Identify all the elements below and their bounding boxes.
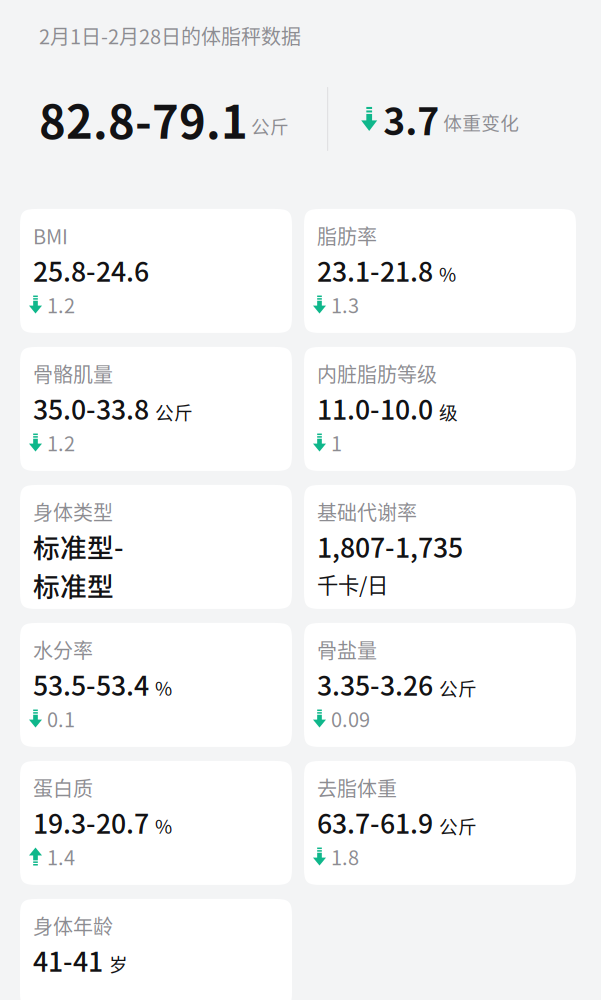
staticText: 82.8-79.1 (39, 86, 248, 152)
staticText: 0.1 (47, 704, 75, 733)
button[interactable]: 内脏脂肪等级 (304, 347, 576, 471)
staticText: 3.7 (383, 92, 439, 146)
staticText: % (439, 260, 456, 287)
staticText: 3.35-3.26 (317, 665, 433, 703)
staticText: 19.3-20.7 (33, 803, 149, 841)
staticText: 1.2 (47, 290, 75, 319)
staticText: 骨盐量 (317, 635, 377, 664)
staticText: 千卡/日 (317, 568, 388, 599)
staticText: 2月1日-2月28日的体脂秤数据 (39, 21, 301, 50)
staticText: 公斤 (439, 674, 477, 701)
staticText: % (155, 674, 172, 701)
staticText: BMI (33, 221, 68, 250)
staticText: 23.1-21.8 (317, 251, 433, 289)
staticText: 11.0-10.0 (317, 389, 433, 427)
staticText: 体重变化 (443, 109, 519, 136)
button[interactable]: 去脂体重 (304, 761, 576, 885)
staticText: 53.5-53.4 (33, 665, 149, 703)
button[interactable]: 蛋白质 (20, 761, 292, 885)
staticText: 内脏脂肪等级 (317, 359, 437, 388)
staticText: 1.2 (47, 428, 75, 457)
button[interactable]: 骨骼肌量 (20, 347, 292, 471)
staticText: 1,807-1,735 (317, 527, 463, 565)
staticText: 水分率 (33, 635, 93, 664)
button[interactable]: 基础代谢率 (304, 485, 576, 609)
staticText: 标准型 (33, 565, 114, 604)
staticText: 公斤 (251, 112, 289, 139)
staticText: 身体年龄 (33, 911, 113, 940)
staticText: 63.7-61.9 (317, 803, 433, 841)
staticText: % (155, 812, 172, 839)
staticText: 1 (331, 428, 342, 457)
button[interactable]: 身体类型 (20, 485, 292, 609)
staticText: 1.8 (331, 842, 359, 871)
staticText: 蛋白质 (33, 773, 93, 802)
staticText: 1.3 (331, 290, 359, 319)
staticText: 骨骼肌量 (33, 359, 113, 388)
staticText: 去脂体重 (317, 773, 397, 802)
staticText: 0.09 (331, 704, 370, 733)
button[interactable]: 身体年龄 (20, 899, 292, 1000)
button[interactable]: 水分率 (20, 623, 292, 747)
staticText: 25.8-24.6 (33, 251, 149, 289)
staticText: 标准型- (33, 527, 124, 565)
button[interactable]: 骨盐量 (304, 623, 576, 747)
staticText: 公斤 (439, 812, 477, 839)
button[interactable]: 脂肪率 (304, 209, 576, 333)
staticText: 35.0-33.8 (33, 389, 149, 427)
button[interactable]: BMI (20, 209, 292, 333)
staticText: 公斤 (155, 398, 193, 425)
staticText: 级 (439, 398, 458, 425)
staticText: 41-41 (33, 941, 103, 979)
staticText: 基础代谢率 (317, 497, 417, 526)
staticText: 1.4 (47, 842, 75, 871)
staticText: 身体类型 (33, 497, 113, 526)
staticText: 脂肪率 (317, 221, 377, 250)
staticText: 岁 (109, 950, 128, 977)
